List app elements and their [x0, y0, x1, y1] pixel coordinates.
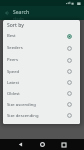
- button[interactable]: Peers: [3, 54, 80, 66]
- staticText: Search: [13, 9, 30, 16]
- button[interactable]: Seeders: [3, 42, 80, 54]
- staticText: ebooks: [13, 17, 24, 21]
- button[interactable]: Recents: [56, 139, 72, 150]
- staticText: Speed: [7, 69, 20, 75]
- button[interactable]: Speed: [3, 66, 80, 77]
- staticText: Sort by: [7, 22, 24, 29]
- staticText: Latest: [7, 80, 19, 86]
- button[interactable]: Latest: [3, 77, 80, 88]
- button[interactable]: Size ascending: [3, 99, 80, 110]
- button[interactable]: Size descending: [3, 110, 80, 121]
- staticText: Oldest: [7, 91, 20, 97]
- staticText: Best: [7, 33, 16, 39]
- staticText: Seeders: [7, 45, 23, 51]
- staticText: Peers: [7, 57, 18, 63]
- button[interactable]: Home: [34, 139, 50, 150]
- button[interactable]: Oldest: [3, 88, 80, 99]
- button[interactable]: Back: [12, 139, 28, 150]
- staticText: Size descending: [7, 113, 39, 119]
- button[interactable]: Back: [0, 6, 13, 20]
- staticText: Size ascending: [7, 102, 36, 108]
- button[interactable]: Best: [3, 30, 80, 42]
